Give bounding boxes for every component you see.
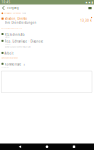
staticText: 13,30 €: [80, 19, 92, 22]
staticText: Kfz-Technik AG: [5, 33, 25, 36]
staticText: Vorgang: [7, 6, 19, 10]
button[interactable]: Home: [40, 143, 54, 150]
button[interactable]: Arbeit: [0, 52, 94, 55]
staticText: Vorgänge: [13, 12, 21, 14]
staticText: ▪ ▪ ▮: [85, 1, 92, 4]
button[interactable]: Kommentare +: [0, 63, 94, 66]
button[interactable]: Back: [13, 143, 27, 150]
staticText: Arbeit: [5, 52, 14, 55]
staticText: Kommentar: [1, 66, 9, 68]
button[interactable]: Recents: [67, 143, 81, 150]
staticText: Schaden, Direkte: [4, 17, 27, 20]
staticText: Verwaltung: [4, 12, 12, 14]
staticText: Kommentare +: [5, 63, 26, 66]
button[interactable]: Save: [86, 4, 94, 11]
button[interactable]: Rep. Lichtanlage · Diagnose: [0, 40, 94, 45]
button[interactable]: Kfz-Technik AG: [0, 33, 94, 38]
staticText: BESCHREIBUNG DER LEISTUNG: [1, 27, 22, 29]
staticText: Leistung: [5, 43, 11, 45]
staticText: Details: [22, 12, 26, 14]
staticText: 10:45: [1, 0, 10, 4]
staticText: Bemerkung: vor dem Termin anrufen: [5, 46, 31, 48]
button[interactable]: Back: [0, 4, 7, 11]
staticText: WEITERE INFORMATIONEN: [1, 57, 18, 59]
staticText: Auftrag: [5, 36, 10, 38]
staticText: Ihre Dienstleistungen: [4, 21, 36, 24]
staticText: Rep. Lichtanlage · Diagnose: [5, 40, 44, 43]
